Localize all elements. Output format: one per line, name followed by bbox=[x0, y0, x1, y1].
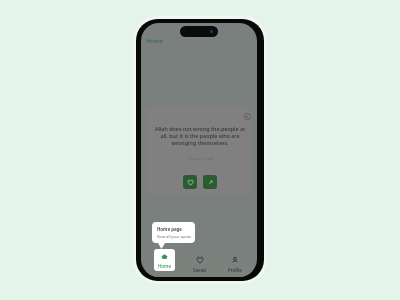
staticText: Home bbox=[146, 37, 163, 45]
staticText: Home bbox=[158, 263, 171, 269]
staticText: [Quran 10:44] bbox=[187, 156, 214, 162]
staticText: Profile bbox=[228, 267, 242, 273]
button[interactable]: Saved bbox=[181, 252, 217, 277]
staticText: Allah does not wrong the people at all, … bbox=[150, 125, 250, 146]
button[interactable]: Like bbox=[183, 175, 197, 189]
button[interactable]: Profile bbox=[217, 252, 253, 277]
button[interactable]: Home bbox=[154, 249, 175, 271]
button[interactable]: Info bbox=[242, 111, 252, 121]
staticText: View all your quote bbox=[157, 234, 191, 239]
button[interactable]: Share bbox=[203, 175, 217, 189]
button[interactable] bbox=[146, 252, 181, 277]
staticText: Saved bbox=[193, 267, 206, 273]
staticText: Home page bbox=[157, 226, 182, 232]
